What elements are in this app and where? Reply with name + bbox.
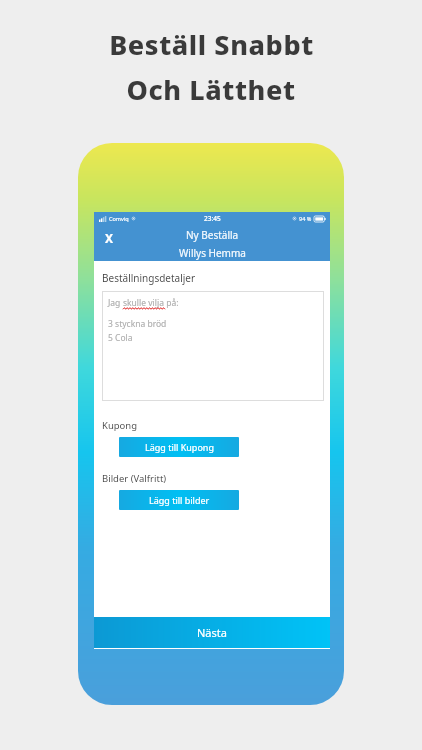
staticText: 23:45 bbox=[204, 214, 221, 223]
staticText: Kupong bbox=[102, 419, 138, 432]
staticText: Nästa bbox=[197, 625, 227, 640]
staticText: Lägg till bilder bbox=[149, 494, 210, 506]
staticText: 5 Cola bbox=[108, 332, 133, 344]
staticText: Bilder (Valfritt) bbox=[102, 472, 167, 485]
staticText: Lägg till Kupong bbox=[145, 441, 214, 453]
button[interactable]: Lägg till bilder bbox=[119, 490, 239, 510]
staticText: Jag bbox=[108, 297, 123, 309]
staticText: 3 styckna bröd bbox=[108, 318, 167, 330]
staticText: Beställningsdetaljer bbox=[102, 271, 196, 285]
button[interactable]: Close bbox=[98, 227, 120, 249]
staticText: Ny Beställa bbox=[186, 228, 239, 242]
staticText: Willys Hemma bbox=[179, 246, 246, 260]
staticText: på: bbox=[164, 297, 179, 309]
staticText: 94 % bbox=[299, 215, 312, 222]
staticText: Comviq bbox=[109, 215, 129, 222]
button[interactable]: Nästa bbox=[94, 617, 330, 648]
staticText: Beställ Snabbt bbox=[109, 26, 314, 63]
staticText: X bbox=[105, 230, 114, 246]
button[interactable]: Lägg till Kupong bbox=[119, 437, 239, 457]
staticText: Och Lätthet bbox=[126, 71, 296, 108]
button[interactable]: Jag bbox=[102, 291, 324, 401]
staticText: skulle vilja bbox=[123, 297, 164, 309]
